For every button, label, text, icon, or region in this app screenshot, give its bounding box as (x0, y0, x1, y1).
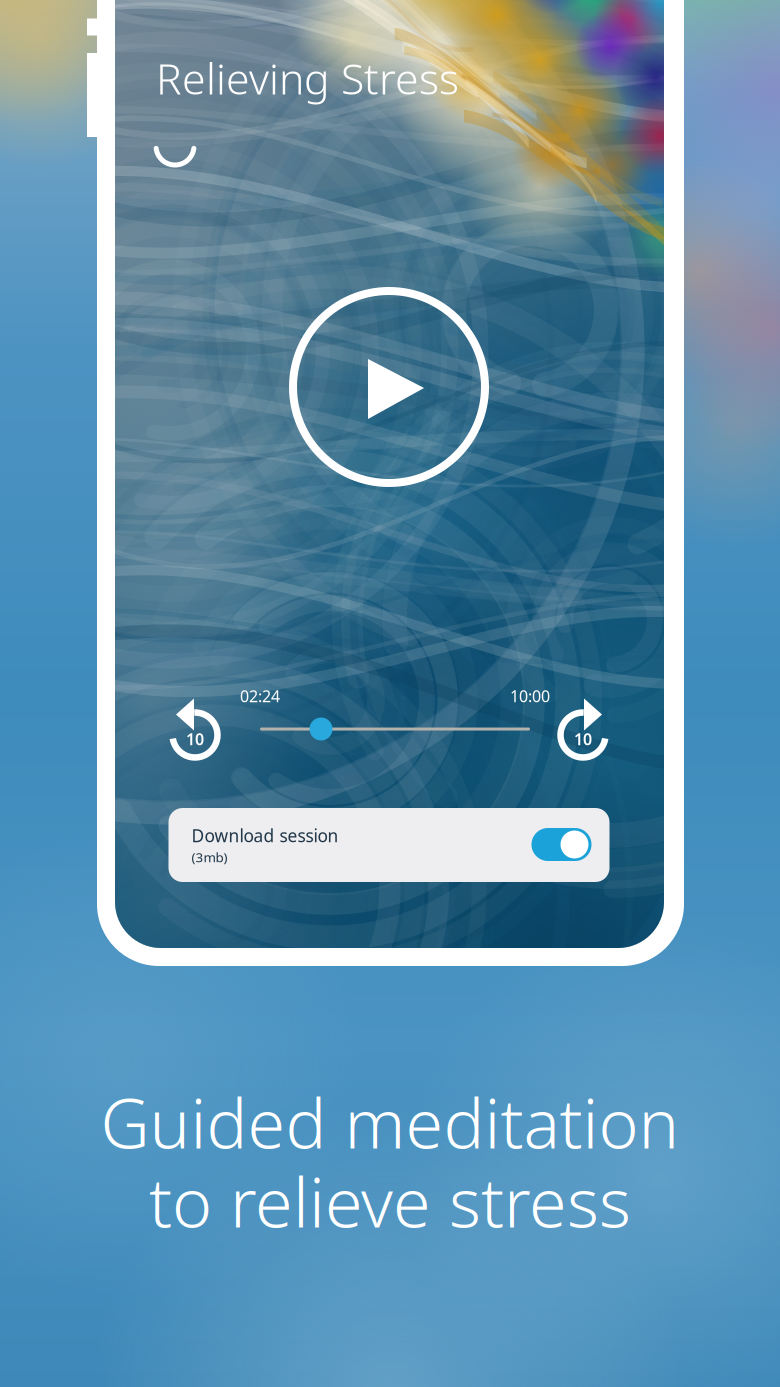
staticText: 02:24 (240, 685, 280, 707)
button[interactable]: Skip forward 10 seconds (553, 703, 613, 763)
staticText: 10 (186, 728, 204, 750)
staticText: Relieving Stress (156, 50, 459, 106)
staticText: 10:00 (510, 685, 550, 707)
staticText: (3mb) (191, 848, 227, 866)
button[interactable]: Play (285, 283, 493, 491)
staticText: Download session (191, 824, 338, 847)
staticText: to relieve stress (149, 1156, 631, 1246)
staticText: Guided meditation (100, 1077, 679, 1167)
button[interactable]: Skip back 10 seconds (165, 703, 225, 763)
button[interactable]: Download session (531, 828, 591, 861)
staticText: 10 (574, 728, 592, 750)
